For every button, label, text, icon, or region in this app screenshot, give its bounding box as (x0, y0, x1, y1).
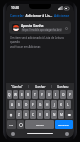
button[interactable]: 123 (7, 120, 16, 129)
button[interactable]: Ganhou (52, 83, 74, 90)
staticText: https://mobile.apostaganha.bet/26… (22, 28, 62, 32)
button[interactable]: "Ganho" (6, 83, 28, 90)
staticText: Um item será adicionado à Lista de Leitu… (10, 36, 70, 44)
button[interactable]: Emoji (17, 120, 24, 129)
staticText: Y (41, 93, 43, 97)
button[interactable]: A (9, 100, 15, 109)
staticText: F (32, 103, 34, 107)
staticText: 10:30 (11, 6, 20, 10)
button[interactable]: E (19, 90, 24, 99)
button[interactable]: Emoji (11, 132, 15, 136)
button[interactable]: Ditado (65, 132, 69, 136)
button[interactable]: V (37, 110, 43, 119)
staticText: Ganhar (35, 85, 46, 89)
staticText: V (39, 113, 41, 117)
button[interactable]: Aposta Ganha (9, 21, 71, 34)
staticText: Cancelar (10, 13, 24, 18)
staticText: X (25, 113, 27, 117)
staticText: C (32, 113, 35, 117)
button[interactable]: Ganhar (29, 83, 51, 90)
staticText: Q (8, 93, 11, 97)
button[interactable]: espaço (25, 120, 54, 129)
staticText: 123 (9, 123, 14, 126)
staticText: Aposta Ganha (21, 23, 44, 27)
button[interactable]: W (13, 90, 18, 99)
button[interactable]: Shift (7, 110, 15, 119)
staticText: I (55, 93, 57, 97)
staticText: D (25, 103, 28, 107)
button[interactable]: C (30, 110, 36, 119)
staticText: Z (18, 113, 20, 117)
button[interactable]: U (46, 90, 52, 99)
staticText: M (60, 113, 63, 117)
button[interactable]: D (23, 100, 29, 109)
button[interactable]: Remover (64, 26, 68, 30)
button[interactable]: Q (7, 90, 12, 99)
staticText: K (60, 103, 62, 107)
staticText: U (48, 93, 51, 97)
staticText: W (14, 93, 17, 97)
button[interactable]: S (16, 100, 22, 109)
button[interactable]: O (60, 90, 66, 99)
button[interactable]: B (44, 110, 50, 119)
button[interactable]: Y (39, 90, 45, 99)
button[interactable]: M (58, 110, 64, 119)
button[interactable]: H (44, 100, 50, 109)
button[interactable]: F (30, 100, 36, 109)
button[interactable]: P (67, 90, 73, 99)
button[interactable]: Z (16, 110, 22, 119)
button[interactable]: K (58, 100, 64, 109)
staticText: J (54, 103, 55, 107)
staticText: H (46, 103, 49, 107)
button[interactable]: N (51, 110, 57, 119)
staticText: S (18, 103, 20, 107)
staticText: P (69, 93, 71, 97)
button[interactable]: T (32, 90, 38, 99)
button[interactable]: pesquisar (55, 120, 73, 129)
staticText: G (39, 103, 42, 107)
staticText: Adicionar (54, 13, 70, 18)
button[interactable]: Adicionar (53, 12, 71, 19)
staticText: B (46, 113, 49, 117)
staticText: T (34, 93, 36, 97)
staticText: Ganhou (57, 85, 69, 89)
staticText: espaço (36, 123, 44, 126)
button[interactable]: G (37, 100, 43, 109)
button[interactable]: X (23, 110, 29, 119)
button[interactable]: Apagar (65, 110, 73, 119)
staticText: N (53, 113, 56, 117)
staticText: A (11, 103, 14, 107)
staticText: você tocar em Adicionar. (10, 45, 41, 49)
button[interactable]: R (25, 90, 31, 99)
staticText: E (21, 93, 23, 97)
button[interactable]: Cancelar (9, 12, 25, 19)
button[interactable]: I (53, 90, 59, 99)
staticText: "Ganho" (11, 85, 23, 89)
staticText: O (62, 93, 65, 97)
staticText: pesquisar (58, 123, 70, 126)
button[interactable]: L (65, 100, 71, 109)
staticText: R (27, 93, 29, 97)
staticText: Adicionar à Lista de L… (25, 13, 53, 18)
staticText: L (67, 103, 69, 107)
button[interactable]: J (51, 100, 57, 109)
